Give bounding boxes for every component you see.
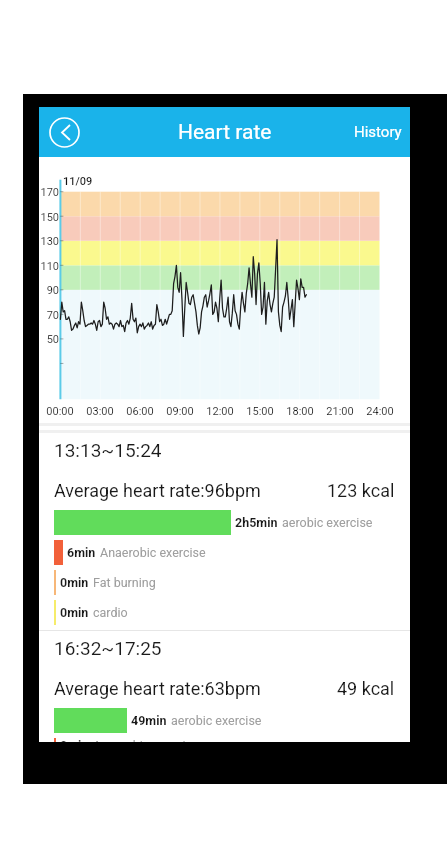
button[interactable]: History xyxy=(343,111,410,153)
staticText: 21:00 xyxy=(322,405,358,418)
staticText: 16:32~17:25 xyxy=(54,637,162,659)
staticText: 13:13~15:24 xyxy=(54,439,162,461)
staticText: Fat burning xyxy=(93,575,156,590)
staticText: Anaerobic exercise xyxy=(93,738,199,742)
staticText: aerobic exercise xyxy=(282,515,373,530)
staticText: 170 xyxy=(39,186,59,199)
staticText: 123 kcal xyxy=(327,480,395,501)
staticText: 0min xyxy=(60,575,89,590)
staticText: 0min xyxy=(60,605,89,620)
staticText: History xyxy=(354,123,402,141)
staticText: 49min xyxy=(131,713,167,728)
staticText: 12:00 xyxy=(202,405,238,418)
staticText: Anaerobic exercise xyxy=(100,545,206,560)
staticText: 6min xyxy=(67,545,96,560)
staticText: aerobic exercise xyxy=(171,713,262,728)
button[interactable]: 13:13~15:24 xyxy=(39,433,410,630)
staticText: 150 xyxy=(39,211,59,224)
staticText: Heart rate xyxy=(178,120,272,145)
staticText: 0min xyxy=(60,738,89,742)
staticText: 15:00 xyxy=(242,405,278,418)
staticText: cardio xyxy=(93,605,128,620)
staticText: 70 xyxy=(39,309,59,322)
staticText: 11/09 xyxy=(63,175,93,188)
button[interactable]: Back xyxy=(44,112,84,152)
staticText: 18:00 xyxy=(282,405,318,418)
staticText: 130 xyxy=(39,235,59,248)
staticText: Average heart rate:63bpm xyxy=(54,678,261,699)
staticText: 49 kcal xyxy=(337,678,395,699)
staticText: 90 xyxy=(39,284,59,297)
staticText: 09:00 xyxy=(162,405,198,418)
staticText: 50 xyxy=(39,333,59,346)
staticText: 00:00 xyxy=(42,405,78,418)
staticText: Average heart rate:96bpm xyxy=(54,480,261,501)
staticText: 2h5min xyxy=(235,515,278,530)
staticText: 03:00 xyxy=(82,405,118,418)
button[interactable]: 16:32~17:25 xyxy=(39,631,410,742)
staticText: 110 xyxy=(39,260,59,273)
staticText: 24:00 xyxy=(362,405,398,418)
staticText: 06:00 xyxy=(122,405,158,418)
